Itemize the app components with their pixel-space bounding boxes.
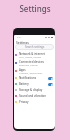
button[interactable]: Search settings <box>15 44 54 50</box>
staticText: Apps <box>19 68 26 72</box>
button[interactable]: Toggle Battery <box>48 83 53 86</box>
button[interactable]: Connected devices <box>15 59 53 67</box>
button[interactable]: Battery <box>15 81 53 87</box>
staticText: Sound and vibration <box>19 94 47 98</box>
staticText: Connected devices <box>19 60 44 64</box>
staticText: Network & internet <box>19 52 45 56</box>
staticText: Storage & display <box>19 88 43 92</box>
button[interactable]: Notifications <box>15 75 53 81</box>
button[interactable]: Network & internet <box>15 51 53 59</box>
staticText: Settings <box>0 3 70 14</box>
staticText: Assistant, default apps <box>19 72 43 75</box>
button[interactable]: Toggle Notifications <box>48 77 53 80</box>
staticText: Notifications <box>19 76 37 80</box>
staticText: 9:41 <box>17 36 22 39</box>
button[interactable]: Sound and vibration <box>15 93 53 99</box>
staticText: Wi-Fi, mobile, hotspot <box>19 56 42 59</box>
staticText: Privacy <box>19 100 29 104</box>
button[interactable]: Storage & display <box>15 87 53 93</box>
staticText: Bluetooth, pairing <box>19 64 38 67</box>
staticText: Settings <box>16 40 29 44</box>
button[interactable]: Privacy <box>15 99 53 105</box>
staticText: Search settings <box>25 45 45 49</box>
button[interactable]: Apps <box>15 67 53 75</box>
staticText: Battery <box>19 82 29 86</box>
